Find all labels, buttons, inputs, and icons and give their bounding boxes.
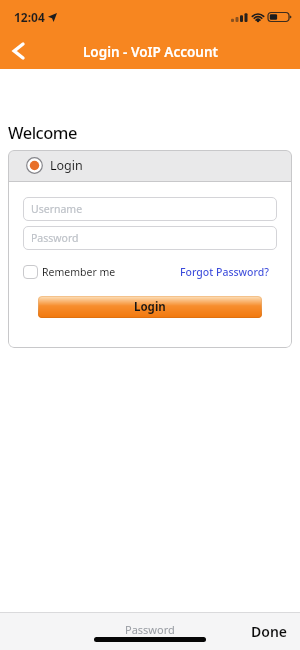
staticText: Welcome: [8, 121, 77, 143]
staticText: Login: [134, 299, 166, 315]
staticText: Remember me: [42, 265, 116, 279]
button[interactable]: Login: [8, 150, 292, 181]
staticText: 12:04: [14, 9, 45, 25]
button[interactable]: Remember me: [23, 265, 116, 279]
button[interactable]: Username: [23, 197, 277, 221]
button[interactable]: [6, 39, 30, 63]
staticText: Password: [125, 622, 175, 637]
button[interactable]: Login: [38, 296, 262, 318]
button[interactable]: Password: [23, 226, 277, 250]
staticText: Username: [31, 202, 83, 216]
staticText: Login: [50, 157, 83, 174]
button[interactable]: Done: [251, 622, 288, 641]
staticText: Password: [31, 231, 79, 245]
button[interactable]: Forgot Password?: [180, 265, 269, 279]
staticText: Login - VoIP Account: [83, 43, 218, 61]
